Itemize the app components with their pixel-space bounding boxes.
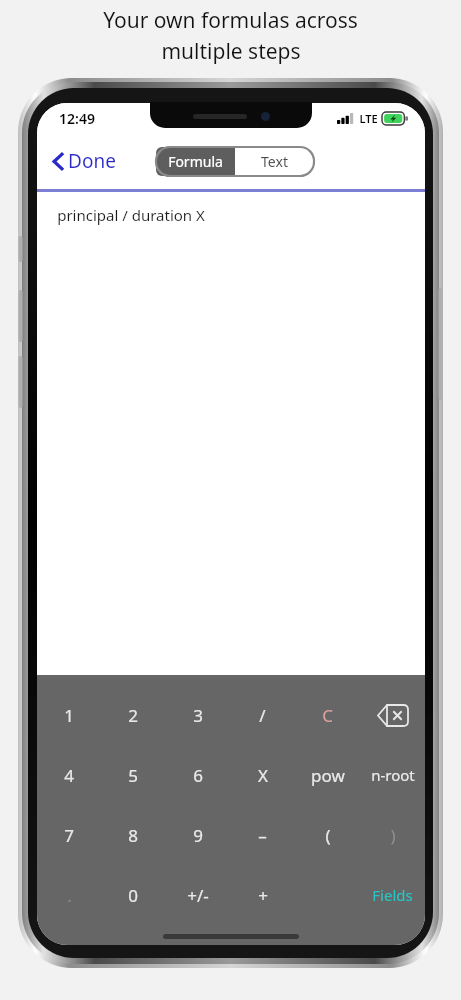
staticText: pow [311,764,345,787]
staticText: Fields [372,885,413,905]
staticText: +/- [187,884,209,907]
staticText: Your own formulas across [103,6,358,35]
button[interactable]: 2 [101,685,165,745]
staticText: 4 [64,764,74,787]
button[interactable]: +/- [165,865,230,925]
button[interactable]: Delete [360,685,425,745]
button[interactable]: 7 [37,805,101,865]
button[interactable]: pow [295,745,360,805]
button[interactable]: Formula [156,147,235,176]
staticText: Done [68,148,116,174]
button[interactable]: principal / duration X [37,192,425,675]
staticText: 9 [193,824,203,847]
staticText: – [258,824,267,847]
staticText: Text [261,152,288,171]
staticText: 6 [193,764,203,787]
staticText: + [258,884,268,907]
button[interactable]: 5 [101,745,165,805]
staticText: 3 [193,704,203,727]
button[interactable]: ( [295,805,360,865]
staticText: 7 [64,824,74,847]
button[interactable]: 4 [37,745,101,805]
button[interactable]: 9 [165,805,230,865]
button[interactable]: Done [47,144,122,178]
button[interactable]: 6 [165,745,230,805]
staticText: / [259,704,266,727]
staticText: C [322,704,333,727]
button[interactable]: 3 [165,685,230,745]
button[interactable]: – [230,805,295,865]
staticText: ( [325,824,331,847]
staticText: . [67,884,72,907]
button[interactable]: n-root [360,745,425,805]
staticText: 1 [64,704,74,727]
staticText: 8 [128,824,138,847]
staticText: 12:49 [59,109,95,128]
staticText: multiple steps [161,37,301,66]
button[interactable]: X [230,745,295,805]
button[interactable]: 0 [101,865,165,925]
staticText: 2 [128,704,138,727]
staticText: ) [390,824,396,847]
button[interactable]: Text [235,147,314,176]
staticText: 0 [128,884,138,907]
staticText: n-root [371,765,415,785]
staticText: LTE [359,111,378,126]
staticText: X [258,764,268,787]
button[interactable]: + [230,865,295,925]
button[interactable]: 8 [101,805,165,865]
staticText: principal / duration X [57,205,205,225]
button[interactable]: Fields [360,865,425,925]
button[interactable]: 1 [37,685,101,745]
button[interactable]: / [230,685,295,745]
staticText: 5 [128,764,138,787]
staticText: Formula [168,152,223,171]
button[interactable]: C [295,685,360,745]
